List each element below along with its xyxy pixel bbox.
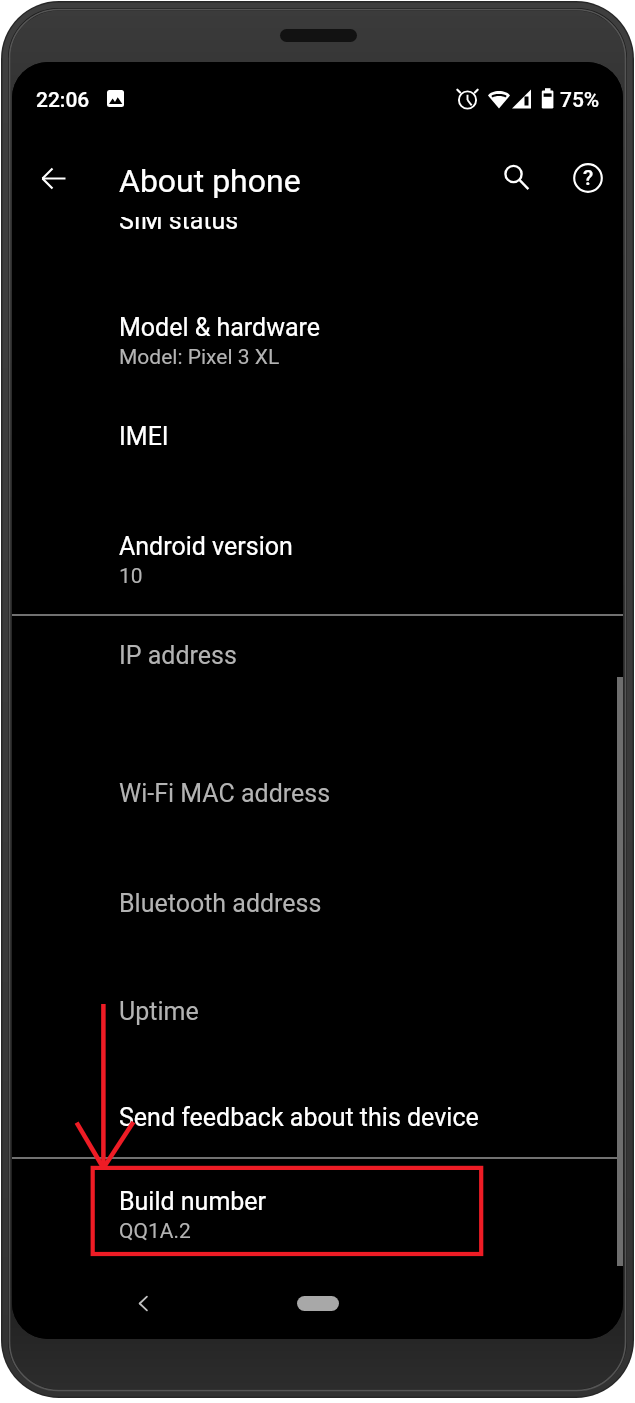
button[interactable]: Model & hardware: [12, 291, 623, 381]
button[interactable]: Android version: [12, 510, 623, 600]
button[interactable]: SIM status: [12, 184, 623, 248]
staticText: IMEI: [119, 422, 169, 451]
staticText: 10: [119, 564, 143, 589]
button[interactable]: Bluetooth address: [12, 867, 623, 931]
button[interactable]: Home: [297, 1296, 339, 1311]
staticText: 22:06: [36, 88, 90, 113]
button[interactable]: Back: [121, 1281, 165, 1325]
staticText: 75%: [560, 88, 600, 113]
staticText: Model & hardware: [119, 313, 321, 342]
button[interactable]: Send feedback about this device: [12, 1081, 623, 1145]
button[interactable]: Uptime: [12, 975, 623, 1039]
button[interactable]: Help and feedback: [564, 154, 612, 202]
staticText: Send feedback about this device: [119, 1103, 479, 1132]
staticText: Build number: [119, 1187, 267, 1216]
button[interactable]: Wi-Fi MAC address: [12, 757, 623, 821]
staticText: About phone: [119, 162, 301, 200]
button[interactable]: Build number: [12, 1165, 623, 1255]
button[interactable]: IMEI: [12, 400, 623, 464]
staticText: Wi-Fi MAC address: [119, 779, 331, 808]
button[interactable]: Search: [492, 153, 540, 201]
button[interactable]: Navigate up: [29, 154, 77, 202]
button[interactable]: IP address: [12, 619, 623, 683]
staticText: Model: Pixel 3 XL: [119, 345, 280, 370]
staticText: Android version: [119, 532, 293, 561]
staticText: QQ1A.2: [119, 1219, 191, 1244]
staticText: Uptime: [119, 997, 199, 1026]
staticText: SIM status: [119, 206, 239, 235]
staticText: Bluetooth address: [119, 889, 322, 918]
staticText: IP address: [119, 641, 237, 670]
staticText: ?: [583, 166, 594, 191]
